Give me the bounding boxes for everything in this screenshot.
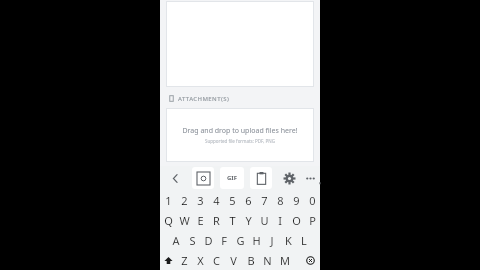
staticText: E [197, 213, 204, 228]
button[interactable]: J [264, 230, 280, 250]
staticText: Y [245, 213, 252, 228]
staticText: L [301, 233, 307, 248]
staticText: H [252, 233, 261, 248]
button[interactable]: D [200, 230, 216, 250]
button[interactable]: Clipboard [250, 167, 272, 189]
staticText: K [285, 233, 292, 248]
staticText: V [230, 253, 237, 268]
staticText: Drag and drop to upload files here! [182, 126, 298, 136]
staticText: O [292, 213, 301, 228]
button[interactable]: F [216, 230, 232, 250]
staticText: ATTACHMENT(S) [178, 95, 230, 103]
button[interactable]: 6 [240, 190, 256, 210]
button[interactable]: S [184, 230, 200, 250]
button[interactable]: Shift [160, 250, 176, 270]
button[interactable]: E [192, 210, 208, 230]
button[interactable]: 0 [304, 190, 320, 210]
button[interactable]: Z [176, 250, 192, 270]
staticText: W [179, 213, 190, 228]
button[interactable]: I [272, 210, 288, 230]
button[interactable]: Backspace [300, 250, 320, 270]
button[interactable]: 2 [176, 190, 192, 210]
staticText: 6 [245, 193, 252, 208]
staticText: GIF [227, 174, 237, 182]
button[interactable]: Back [164, 167, 186, 189]
button[interactable]: M [276, 250, 293, 270]
staticText: D [204, 233, 213, 248]
button[interactable]: L [296, 230, 312, 250]
staticText: Supported file formats: PDF, PNG [205, 138, 275, 144]
button[interactable]: H [248, 230, 264, 250]
button[interactable]: 7 [256, 190, 272, 210]
staticText: 5 [229, 193, 236, 208]
staticText: 9 [293, 193, 300, 208]
staticText: Z [181, 253, 188, 268]
button[interactable]: V [225, 250, 242, 270]
button[interactable]: U [256, 210, 272, 230]
staticText: T [229, 213, 236, 228]
button[interactable]: Stickers [192, 167, 214, 189]
button[interactable]: Q [160, 210, 176, 230]
button[interactable]: 3 [192, 190, 208, 210]
button[interactable]: 4 [208, 190, 224, 210]
staticText: G [236, 233, 245, 248]
button[interactable]: 8 [272, 190, 288, 210]
button[interactable]: 1 [160, 190, 176, 210]
button[interactable]: X [192, 250, 208, 270]
button[interactable]: Settings [278, 167, 300, 189]
button[interactable]: G [232, 230, 248, 250]
button[interactable] [166, 1, 314, 87]
staticText: C [213, 253, 220, 268]
button[interactable]: W [176, 210, 192, 230]
staticText: 3 [197, 193, 204, 208]
button[interactable]: More options [300, 167, 320, 189]
staticText: 8 [277, 193, 284, 208]
staticText: S [189, 233, 196, 248]
button[interactable]: A [168, 230, 184, 250]
staticText: 1 [165, 193, 172, 208]
button[interactable]: K [280, 230, 296, 250]
staticText: 4 [213, 193, 220, 208]
button[interactable]: Y [240, 210, 256, 230]
button[interactable]: GIF [220, 167, 244, 189]
staticText: 2 [181, 193, 188, 208]
staticText: A [172, 233, 180, 248]
staticText: I [278, 213, 282, 228]
staticText: U [260, 213, 269, 228]
staticText: 7 [261, 193, 268, 208]
staticText: B [247, 253, 255, 268]
staticText: Q [164, 213, 173, 228]
staticText: M [280, 253, 290, 268]
button[interactable]: ATTACHMENT(S) [168, 92, 320, 105]
staticText: J [270, 233, 274, 248]
button[interactable]: P [304, 210, 320, 230]
staticText: N [263, 253, 272, 268]
button[interactable]: C [208, 250, 225, 270]
button[interactable]: R [208, 210, 224, 230]
button[interactable]: N [259, 250, 276, 270]
button[interactable]: 5 [224, 190, 240, 210]
button[interactable]: B [242, 250, 259, 270]
button[interactable]: O [288, 210, 304, 230]
button[interactable]: Drag and drop to upload files here! [166, 108, 314, 162]
staticText: F [221, 233, 227, 248]
staticText: P [309, 213, 316, 228]
staticText: R [213, 213, 220, 228]
button[interactable]: 9 [288, 190, 304, 210]
staticText: 0 [309, 193, 316, 208]
button[interactable]: T [224, 210, 240, 230]
staticText: X [197, 253, 204, 268]
